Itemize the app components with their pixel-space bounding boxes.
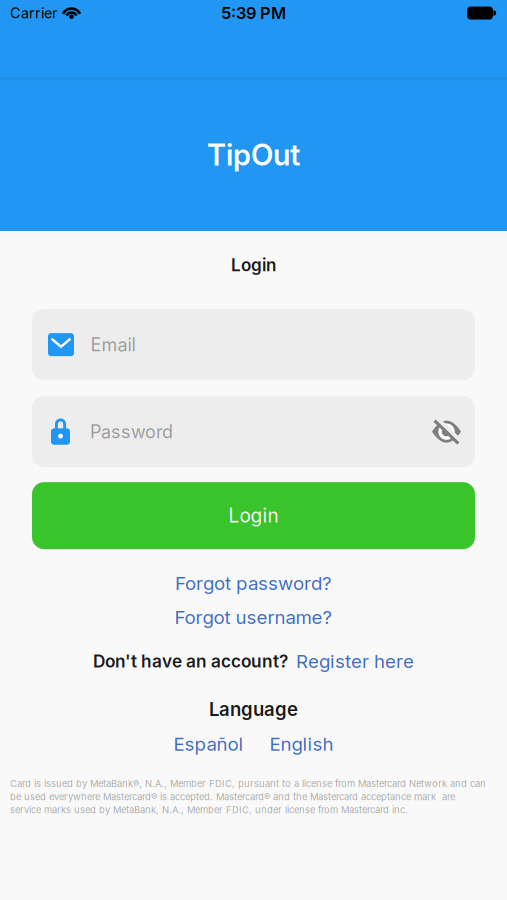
staticText: Carrier [10,4,57,21]
staticText: Forgot password? [175,572,332,594]
button[interactable]: Email [32,309,475,380]
button[interactable]: Login [32,482,475,549]
button[interactable]: Español [173,733,243,755]
staticText: Don't have an account? [93,651,288,671]
button[interactable]: Register here [296,650,414,672]
staticText: 5:39 PM [221,3,286,23]
staticText: TipOut [207,137,300,172]
staticText: Password [90,421,173,442]
button[interactable]: Forgot username? [174,606,332,628]
staticText: Language [209,698,298,720]
button[interactable]: Password [32,396,475,467]
staticText: Login [228,504,278,527]
staticText: Email [90,334,135,355]
staticText: English [269,733,333,755]
button[interactable]: Forgot password? [175,572,332,594]
button[interactable]: Show password [432,420,461,443]
staticText: Card is issued by MetaBank®, N.A., Membe… [10,778,486,815]
staticText: Register here [296,650,414,672]
staticText: Español [173,733,243,755]
staticText: Login [231,255,276,275]
staticText: Forgot username? [174,606,332,628]
button[interactable]: English [269,733,333,755]
